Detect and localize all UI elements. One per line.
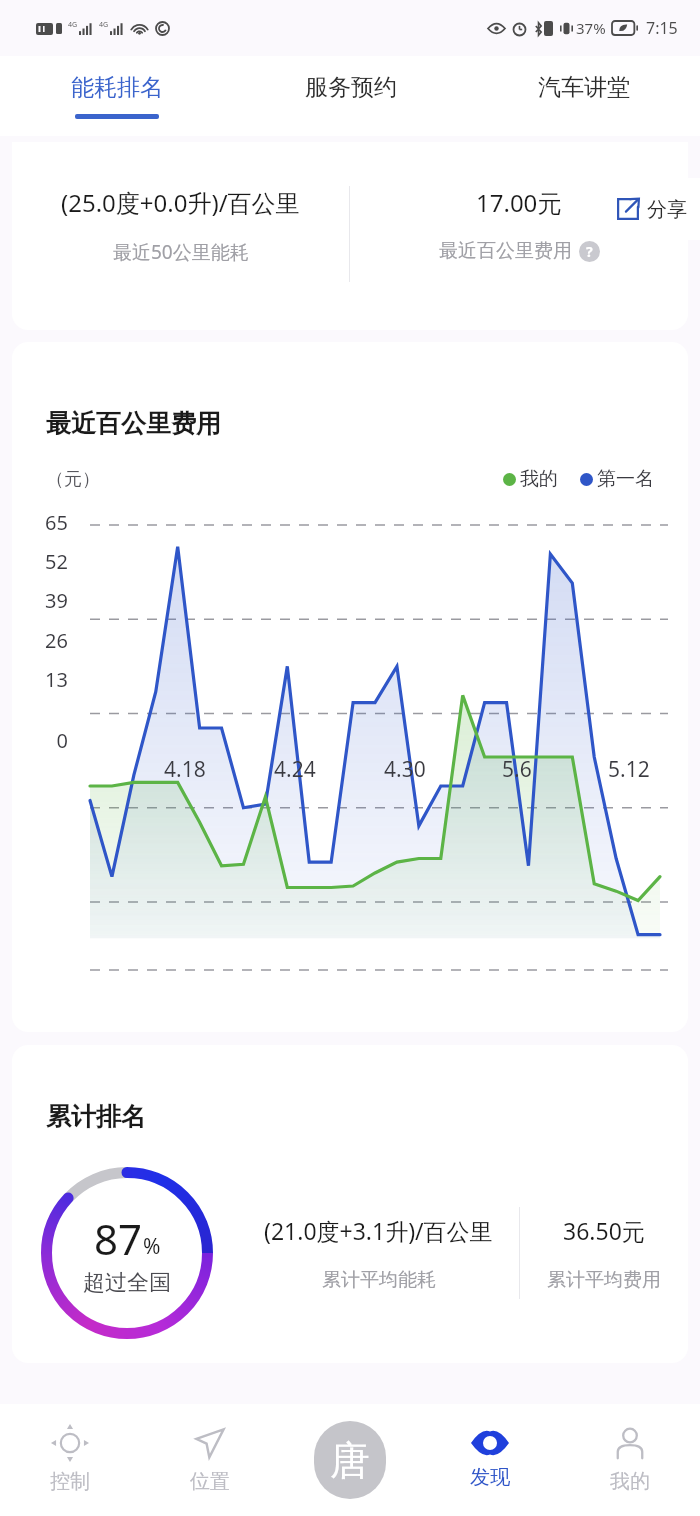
button[interactable]: 唐 [280,1404,420,1516]
staticText: 5.12 [608,755,650,784]
button[interactable]: 能耗排名 [0,56,234,136]
staticText: 4.18 [164,755,206,784]
staticText: 累计平均费用 [547,1268,661,1292]
staticText: 4.24 [274,755,316,784]
button[interactable]: 汽车讲堂 [467,56,700,136]
staticText: 累计排名 [46,1101,146,1132]
staticText: 13 [34,666,68,693]
staticText: （元） [46,468,100,491]
staticText: 唐 [330,1435,370,1485]
button[interactable]: 控制 [0,1404,140,1516]
staticText: 4G [99,20,109,30]
staticText: 汽车讲堂 [538,73,630,102]
staticText: 0 [34,727,68,754]
staticText: 能耗排名 [71,73,163,102]
staticText: % [143,1232,161,1261]
staticText: 52 [34,548,68,575]
staticText: 控制 [50,1469,90,1494]
staticText: 超过全国 [83,1269,171,1297]
button[interactable]: 发现 [420,1404,560,1516]
staticText: 最近百公里费用 [439,239,572,263]
staticText: 分享 [647,197,687,222]
staticText: 发现 [470,1465,510,1490]
staticText: 位置 [190,1469,230,1494]
staticText: 我的 [520,467,558,491]
staticText: (21.0度+3.1升)/百公里 [264,1215,493,1246]
button[interactable]: 累计排名 [12,1045,688,1363]
staticText: 累计平均能耗 [322,1268,436,1292]
staticText: 最近50公里能耗 [113,239,249,265]
button[interactable]: 服务预约 [234,56,467,136]
staticText: 36.50元 [563,1215,645,1246]
staticText: 26 [34,627,68,654]
staticText: 87 [94,1210,143,1267]
staticText: 4.30 [384,755,426,784]
staticText: ? [586,242,593,261]
button[interactable]: (25.0度+0.0升)/百公里 [12,142,688,330]
staticText: 37% [576,18,606,38]
staticText: 服务预约 [305,73,397,102]
staticText: 39 [34,587,68,614]
button[interactable]: 最近百公里费用 [12,342,688,1032]
staticText: 我的 [610,1469,650,1494]
button[interactable]: 位置 [140,1404,280,1516]
staticText: 第一名 [597,467,654,491]
staticText: 最近百公里费用 [46,408,221,439]
button[interactable]: 我的 [560,1404,700,1516]
staticText: 65 [34,509,68,536]
staticText: 4G [68,20,78,30]
button[interactable]: 分享 [596,178,700,240]
staticText: 17.00元 [476,186,562,219]
button[interactable]: 帮助 [579,241,600,262]
staticText: 5.6 [502,755,532,784]
staticText: (25.0度+0.0升)/百公里 [61,186,300,219]
staticText: 7:15 [646,17,678,39]
